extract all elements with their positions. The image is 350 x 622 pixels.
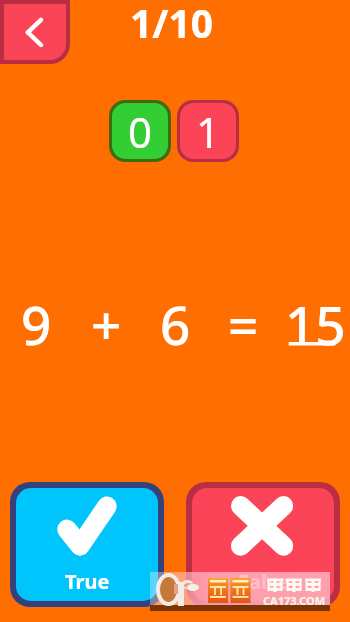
staticText: 0 [128, 103, 153, 159]
staticText: + [91, 288, 122, 356]
staticText: CA173.COM [263, 593, 326, 608]
button[interactable]: True [16, 488, 158, 601]
staticText: 9 [21, 288, 52, 356]
staticText: 1 [196, 103, 221, 159]
button[interactable]: False [192, 488, 334, 601]
staticText: = [228, 288, 259, 356]
button[interactable]: Back [4, 4, 66, 60]
staticText: 15 [285, 288, 346, 356]
staticText: 1/10 [130, 0, 214, 49]
staticText: False [238, 568, 289, 595]
staticText: True [65, 568, 110, 595]
staticText: 6 [160, 288, 191, 356]
